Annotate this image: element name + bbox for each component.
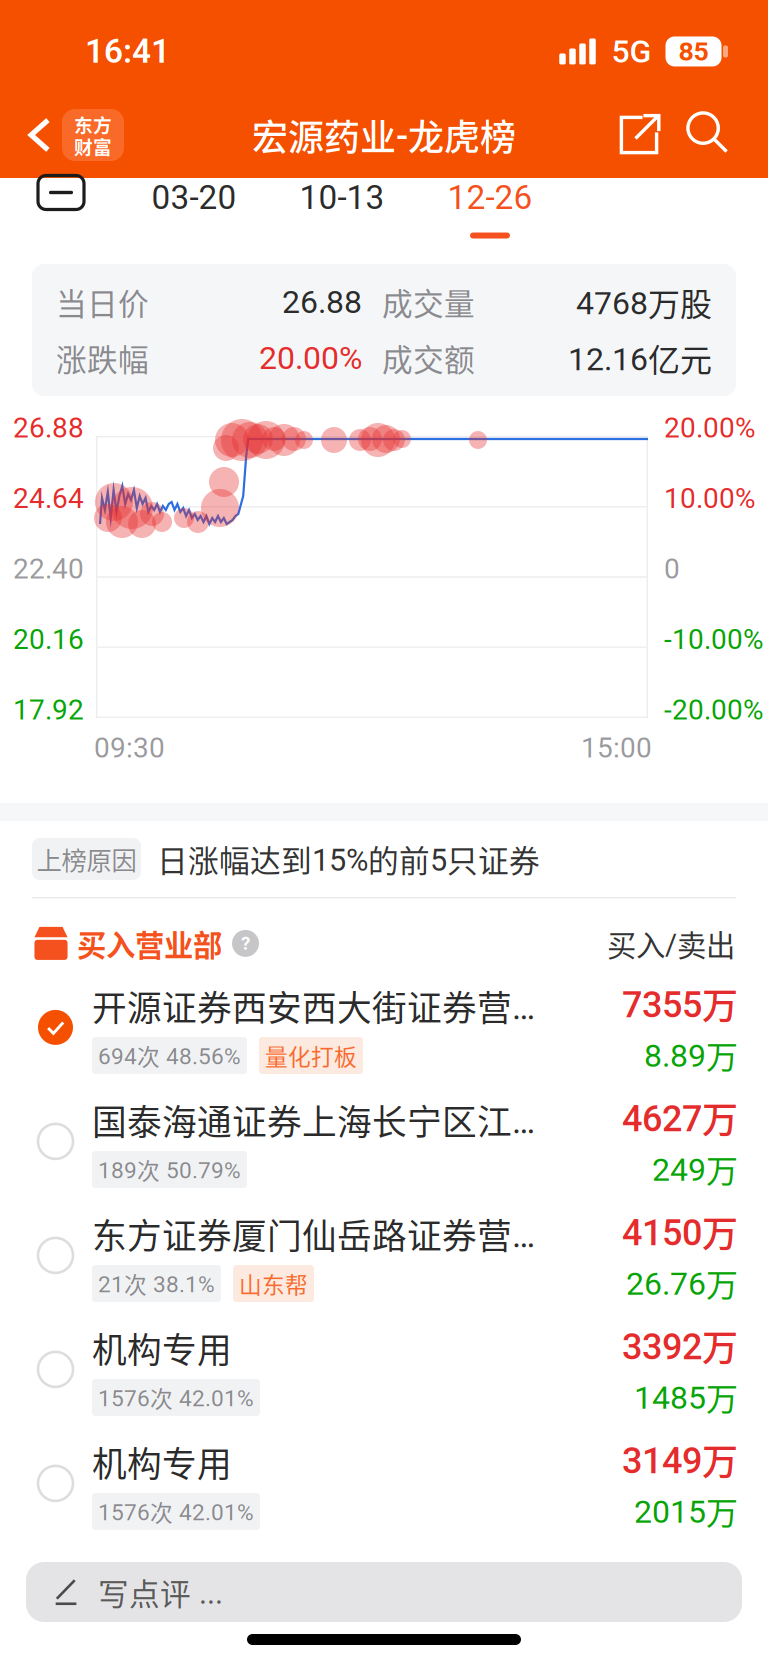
staticText: 量化打板 (265, 1039, 357, 1072)
staticText: 20.00% (664, 412, 756, 444)
staticText: 买入/卖出 (607, 922, 735, 965)
staticText: 东方证券厦门仙岳路证券营… (92, 1209, 535, 1259)
staticText: 涨跌幅 (56, 336, 149, 380)
button[interactable]: 12-26 (416, 175, 564, 238)
staticText: 10-13 (299, 178, 384, 217)
staticText: 成交量 (382, 280, 475, 324)
button[interactable]: 东方证券厦门仙岳路证券营… (0, 1198, 768, 1312)
staticText: 机构专用 (92, 1323, 232, 1373)
staticText: 5G (611, 33, 651, 70)
staticText: 24.64 (13, 482, 84, 515)
staticText: 2015万 (634, 1487, 738, 1534)
staticText: 16:41 (85, 32, 170, 71)
staticText: 开源证券西安西大街证券营… (92, 981, 535, 1031)
button[interactable]: 机构专用 (0, 1312, 768, 1426)
staticText: 4627万 (622, 1091, 738, 1143)
staticText: 4150万 (622, 1205, 738, 1257)
staticText: 机构专用 (92, 1437, 232, 1487)
staticText: 3149万 (622, 1433, 738, 1485)
staticText: -10.00% (664, 623, 764, 656)
staticText: 3392万 (622, 1319, 738, 1371)
staticText: 日涨幅达到15%的前5只证券 (157, 837, 540, 881)
staticText: 03-20 (151, 178, 236, 217)
staticText: 1576次 42.01% (98, 1381, 254, 1414)
staticText: 当日价 (56, 280, 149, 324)
staticText: 1485万 (634, 1373, 738, 1420)
staticText: 8.89万 (644, 1031, 738, 1078)
button[interactable]: 机构专用 (0, 1426, 768, 1540)
staticText: 财富 (74, 132, 112, 159)
staticText: 12-26 (447, 178, 532, 217)
staticText: 成交额 (382, 336, 475, 380)
staticText: 26.88 (13, 412, 84, 444)
staticText: 26.88 (282, 283, 362, 321)
staticText: 写点评 ... (98, 1570, 223, 1614)
staticText: 宏源药业-龙虎榜 (252, 109, 516, 161)
button[interactable]: 10-13 (268, 175, 416, 238)
staticText: 上榜原因 (36, 841, 136, 877)
staticText: -20.00% (664, 694, 764, 726)
staticText: 1576次 42.01% (98, 1495, 254, 1528)
staticText: 249万 (652, 1145, 738, 1192)
staticText: 15:00 (581, 732, 652, 764)
button[interactable]: 分享 (604, 92, 674, 178)
staticText: 0 (664, 553, 680, 585)
staticText: 7355万 (622, 977, 738, 1029)
staticText: 12.16亿元 (568, 335, 712, 381)
button[interactable]: 返回 东方财富 (0, 92, 124, 178)
staticText: 85 (678, 36, 708, 67)
staticText: 山东帮 (239, 1267, 308, 1300)
staticText: 21次 38.1% (98, 1267, 215, 1300)
staticText: ? (241, 932, 250, 954)
staticText: 10.00% (664, 482, 756, 515)
button[interactable]: 开源证券西安西大街证券营… (0, 970, 768, 1084)
staticText: 17.92 (13, 694, 84, 726)
staticText: 189次 50.79% (98, 1153, 241, 1186)
staticText: 26.76万 (626, 1259, 738, 1306)
button[interactable]: 国泰海通证券上海长宁区江… (0, 1084, 768, 1198)
staticText: 买入营业部 (77, 922, 222, 965)
staticText: 22.40 (13, 553, 84, 585)
staticText: 国泰海通证券上海长宁区江… (92, 1095, 535, 1145)
staticText: 20.16 (13, 623, 84, 656)
staticText: 4768万股 (576, 279, 712, 325)
button[interactable]: 搜索 (674, 92, 746, 178)
button[interactable]: 03-20 (120, 175, 268, 238)
staticText: 09:30 (94, 732, 165, 764)
staticText: 东方 (74, 110, 112, 137)
button[interactable]: 写点评 ... (0, 1562, 768, 1622)
staticText: 20.00% (259, 339, 362, 377)
staticText: 694次 48.56% (98, 1039, 241, 1072)
